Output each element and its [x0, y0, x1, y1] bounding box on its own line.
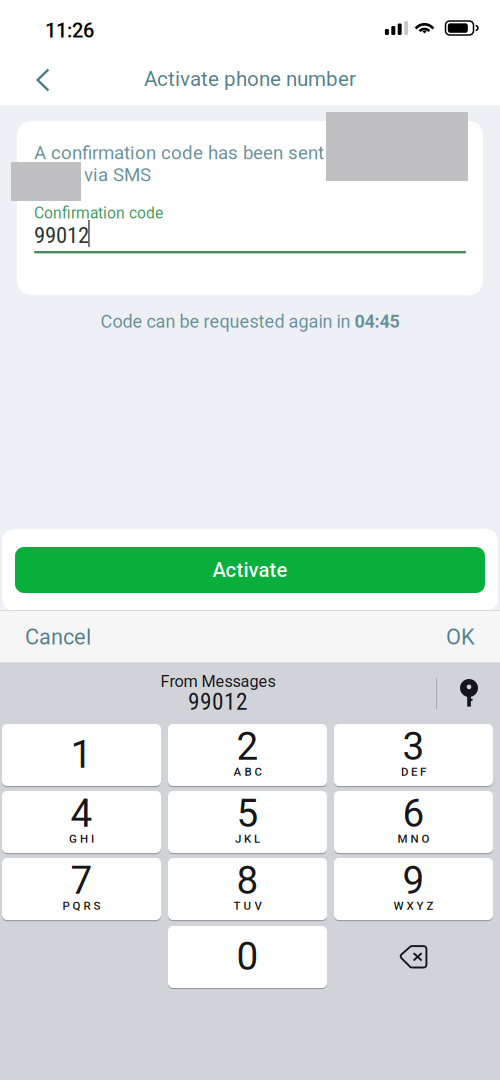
staticText: Confirmation code	[34, 204, 163, 222]
staticText: M N O	[397, 832, 429, 845]
staticText: 04:45	[354, 311, 399, 332]
staticText: A B C	[233, 765, 261, 778]
staticText: D E F	[401, 765, 426, 778]
staticText: 4	[70, 791, 92, 836]
staticText: Activate	[212, 558, 287, 582]
staticText: Cancel	[25, 624, 91, 650]
staticText: W X Y Z	[393, 899, 433, 912]
button[interactable]: 1	[2, 724, 161, 786]
staticText: G H I	[69, 832, 94, 845]
button[interactable]: Activate	[15, 547, 485, 593]
staticText: Activate phone number	[144, 67, 356, 91]
staticText: 99012	[188, 688, 248, 715]
staticText: T U V	[233, 899, 261, 912]
button[interactable]: OK	[404, 611, 484, 663]
button[interactable]: Passwords	[447, 671, 491, 715]
button[interactable]: 5	[168, 791, 327, 853]
staticText: via SMS	[84, 164, 151, 186]
staticText: From Messages	[160, 672, 275, 691]
staticText: A confirmation code has been sent to	[34, 142, 346, 164]
button[interactable]: 0	[168, 926, 327, 988]
staticText: J K L	[235, 832, 260, 845]
button[interactable]: 8	[168, 858, 327, 920]
staticText: 2	[236, 724, 258, 769]
staticText: Code can be requested again in	[100, 311, 354, 332]
button[interactable]: Cancel	[16, 611, 116, 663]
staticText: P Q R S	[62, 899, 100, 912]
button[interactable]: 6	[334, 791, 493, 853]
staticText: 9	[402, 858, 424, 903]
button[interactable]: Back	[20, 57, 66, 103]
staticText: 1	[70, 732, 92, 777]
button[interactable]: 4	[2, 791, 161, 853]
staticText: 99012	[34, 222, 89, 249]
staticText: 3	[402, 724, 424, 769]
button[interactable]: 7	[2, 858, 161, 920]
button[interactable]: 9	[334, 858, 493, 920]
button[interactable]: 3	[334, 724, 493, 786]
button[interactable]: Delete	[334, 926, 493, 988]
staticText: 7	[70, 858, 92, 903]
staticText: 11:26	[45, 19, 94, 42]
button[interactable]: 2	[168, 724, 327, 786]
staticText: OK	[446, 624, 475, 650]
staticText: 5	[236, 791, 258, 836]
staticText: 6	[402, 791, 424, 836]
staticText: 8	[236, 858, 258, 903]
staticText: 0	[236, 934, 258, 979]
